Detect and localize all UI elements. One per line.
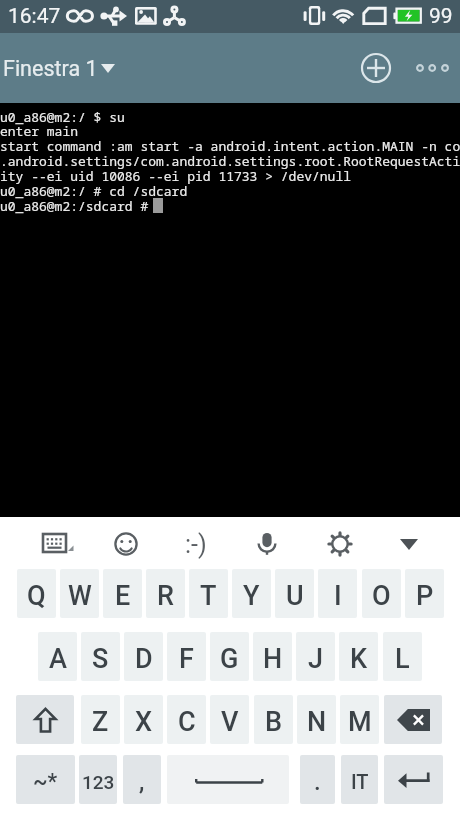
- button[interactable]: D: [124, 632, 163, 681]
- staticText: Y: [243, 580, 260, 612]
- staticText: u0_a86@m2:/ $ su: [0, 108, 125, 126]
- button[interactable]: P: [405, 569, 444, 618]
- button[interactable]: Finestra 1: [1, 46, 123, 90]
- button[interactable]: T: [189, 569, 228, 618]
- button[interactable]: J: [296, 632, 335, 681]
- staticText: 99: [429, 4, 453, 29]
- button[interactable]: Enter: [384, 755, 443, 804]
- button[interactable]: .: [300, 755, 335, 804]
- button[interactable]: M: [340, 695, 379, 744]
- button[interactable]: O: [362, 569, 401, 618]
- staticText: R: [157, 580, 174, 612]
- staticText: M: [348, 706, 372, 738]
- button[interactable]: Voice input: [245, 521, 289, 565]
- button[interactable]: I: [318, 569, 357, 618]
- staticText: O: [372, 580, 391, 612]
- staticText: N: [307, 706, 327, 738]
- button[interactable]: Emoji: [104, 522, 148, 566]
- staticText: start command :am start -a android.inten…: [0, 137, 460, 155]
- button[interactable]: W: [60, 569, 99, 618]
- button[interactable]: C: [167, 695, 206, 744]
- staticText: C: [178, 706, 196, 738]
- staticText: enter main: [0, 122, 79, 140]
- staticText: X: [135, 706, 153, 738]
- button[interactable]: Space: [167, 755, 289, 804]
- staticText: ~*: [33, 769, 58, 795]
- button[interactable]: V: [210, 695, 249, 744]
- button[interactable]: G: [210, 632, 249, 681]
- button[interactable]: ~*: [16, 755, 75, 804]
- staticText: ity --ei uid 10086 --ei pid 11733 > /dev…: [0, 167, 351, 185]
- button[interactable]: :-): [174, 522, 218, 566]
- staticText: ,: [139, 768, 145, 796]
- button[interactable]: S: [81, 632, 120, 681]
- button[interactable]: 123: [79, 755, 117, 804]
- staticText: V: [221, 706, 239, 738]
- button[interactable]: IT: [341, 755, 378, 804]
- staticText: Q: [27, 580, 46, 612]
- staticText: .android.settings/com.android.settings.r…: [0, 152, 460, 170]
- button[interactable]: New window: [354, 46, 397, 89]
- staticText: A: [49, 643, 67, 675]
- staticText: I: [334, 580, 342, 612]
- button[interactable]: X: [124, 695, 163, 744]
- staticText: B: [265, 706, 283, 738]
- staticText: IT: [351, 770, 369, 793]
- staticText: W: [68, 580, 92, 612]
- button[interactable]: ,: [123, 755, 161, 804]
- button[interactable]: Shift: [16, 695, 74, 744]
- staticText: H: [263, 643, 283, 675]
- button[interactable]: E: [103, 569, 142, 618]
- staticText: F: [179, 643, 194, 675]
- staticText: E: [115, 580, 131, 612]
- staticText: 123: [82, 771, 115, 793]
- button[interactable]: H: [253, 632, 292, 681]
- staticText: Finestra 1: [3, 56, 98, 81]
- button[interactable]: B: [254, 695, 293, 744]
- button[interactable]: Z: [81, 695, 120, 744]
- staticText: Z: [92, 706, 109, 738]
- staticText: S: [92, 643, 109, 675]
- staticText: K: [350, 643, 368, 675]
- button[interactable]: F: [167, 632, 206, 681]
- button[interactable]: L: [383, 632, 422, 681]
- button[interactable]: Y: [232, 569, 271, 618]
- button[interactable]: N: [297, 695, 336, 744]
- button[interactable]: Keyboard: [36, 523, 80, 567]
- button[interactable]: Settings: [318, 522, 362, 566]
- button[interactable]: A: [38, 632, 77, 681]
- button[interactable]: Hide keyboard: [387, 522, 431, 566]
- button[interactable]: K: [339, 632, 378, 681]
- button[interactable]: R: [146, 569, 185, 618]
- staticText: U: [286, 580, 304, 612]
- button[interactable]: U: [275, 569, 314, 618]
- staticText: L: [395, 643, 410, 675]
- staticText: 16:47: [8, 4, 61, 29]
- button[interactable]: Q: [17, 569, 56, 618]
- staticText: .: [314, 768, 321, 796]
- button[interactable]: Backspace: [384, 695, 442, 744]
- staticText: u0_a86@m2:/sdcard #: [0, 197, 157, 215]
- staticText: P: [416, 580, 434, 612]
- staticText: T: [200, 580, 217, 612]
- staticText: J: [308, 643, 323, 675]
- staticText: u0_a86@m2:/ # cd /sdcard: [0, 182, 188, 200]
- button[interactable]: More options: [404, 45, 456, 90]
- staticText: :-): [185, 530, 207, 559]
- staticText: D: [135, 643, 153, 675]
- staticText: G: [220, 643, 239, 675]
